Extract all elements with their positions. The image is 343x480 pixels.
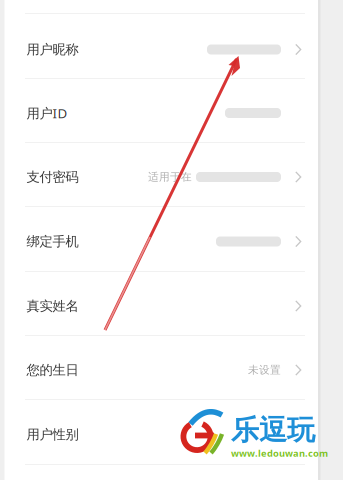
button[interactable]: 真实姓名 [0, 272, 343, 335]
staticText: 用户性别 [26, 426, 78, 443]
staticText: 乐逗玩 [231, 413, 315, 447]
staticText: 用户昵称 [26, 41, 78, 58]
staticText: 未设置 [248, 363, 281, 376]
staticText: www.ledouwan.com [231, 447, 328, 459]
staticText: 真实姓名 [26, 298, 78, 314]
staticText: 适用于在 [148, 170, 192, 183]
button[interactable]: 绑定手机 [0, 207, 343, 271]
staticText: 绑定手机 [26, 233, 78, 250]
button[interactable]: 支付密码 [0, 143, 343, 206]
button[interactable]: 用户昵称 [0, 14, 343, 78]
staticText: 支付密码 [26, 169, 78, 185]
staticText: 用户ID [26, 104, 67, 122]
button[interactable]: 用户性别 [0, 400, 343, 464]
button[interactable]: 您的生日 [0, 336, 343, 399]
button[interactable]: 用户ID [0, 79, 343, 142]
staticText: 您的生日 [26, 362, 78, 378]
